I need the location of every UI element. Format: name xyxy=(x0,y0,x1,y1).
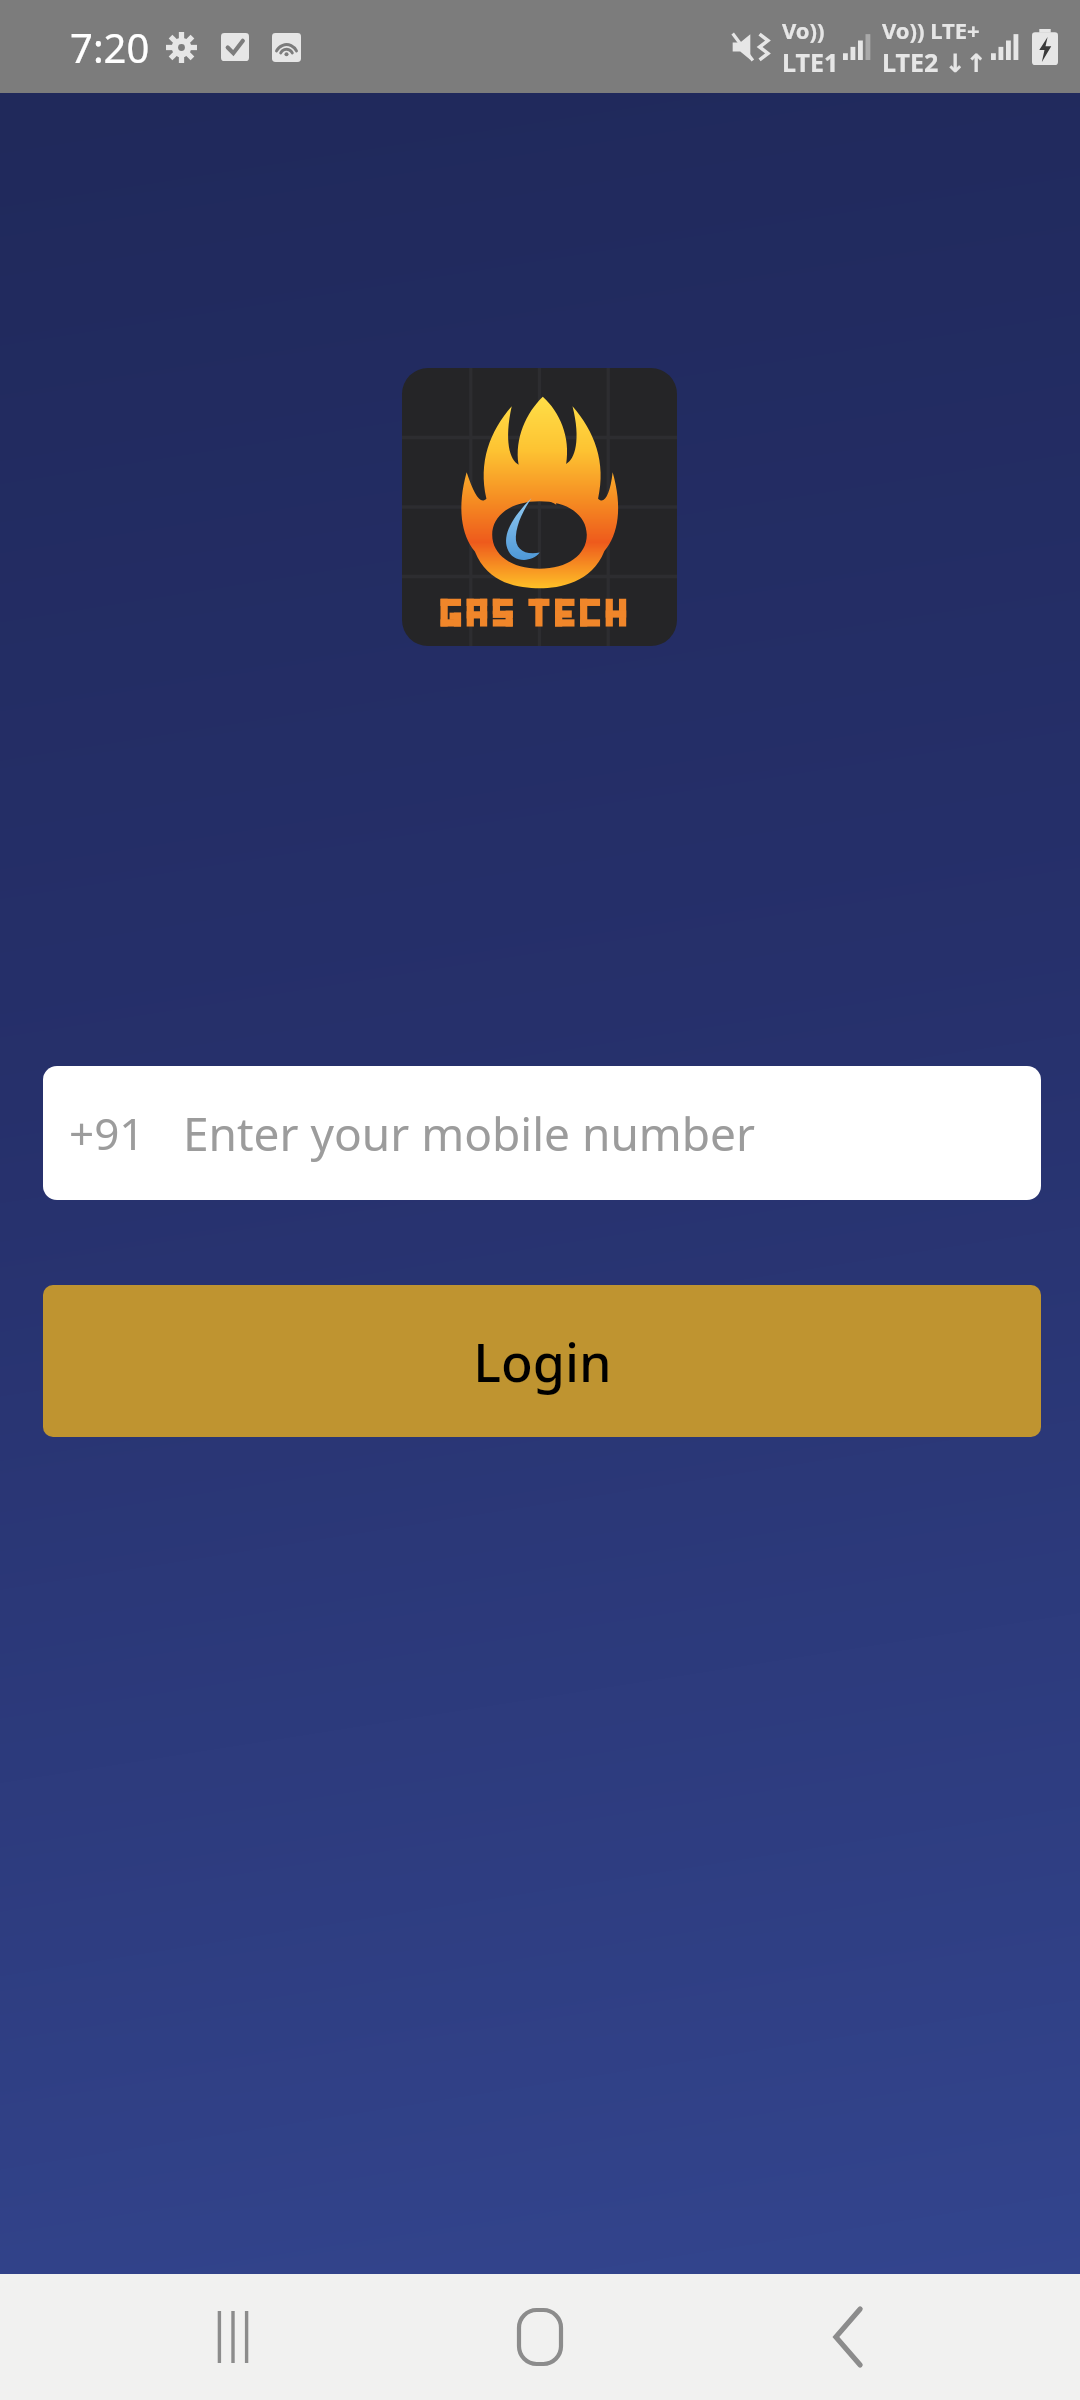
button[interactable]: Back xyxy=(773,2274,923,2400)
button[interactable]: Recent apps xyxy=(158,2274,308,2400)
staticText: +91 xyxy=(69,1103,145,1163)
staticText: Enter your mobile number xyxy=(183,1102,756,1165)
staticText: Login xyxy=(473,1326,612,1397)
staticText: 7:20 xyxy=(70,20,150,74)
button[interactable]: Login xyxy=(43,1285,1041,1437)
staticText: Vo)) xyxy=(782,15,825,45)
staticText: LTE1 xyxy=(782,45,839,79)
staticText: LTE2 ↓↑ xyxy=(882,45,987,79)
staticText: Vo)) LTE+ xyxy=(882,15,980,45)
button[interactable]: Home xyxy=(465,2274,615,2400)
button[interactable]: +91 xyxy=(43,1066,1041,1200)
